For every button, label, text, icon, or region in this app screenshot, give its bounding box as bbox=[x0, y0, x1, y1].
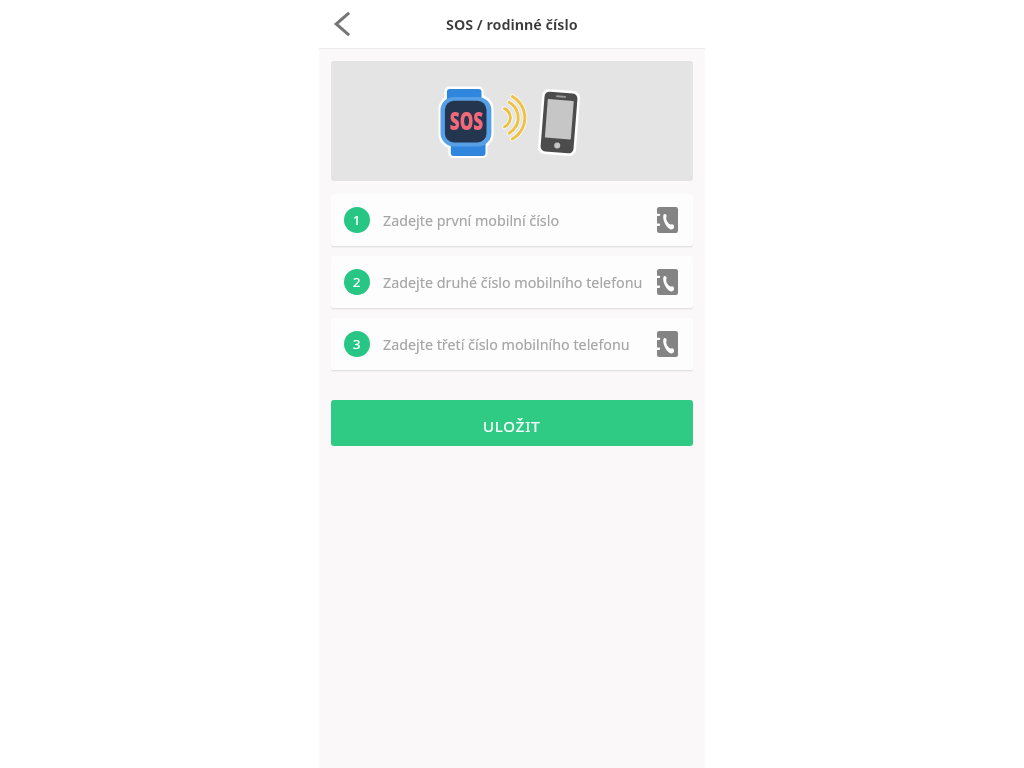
button[interactable]: 1 bbox=[331, 194, 693, 246]
button[interactable]: Choose contact bbox=[652, 205, 682, 235]
staticText: Zadejte první mobilní číslo bbox=[383, 211, 652, 230]
button[interactable]: 3 bbox=[331, 318, 693, 370]
button[interactable]: Choose contact bbox=[652, 329, 682, 359]
staticText: SOS bbox=[450, 103, 483, 133]
staticText: 2 bbox=[353, 273, 361, 291]
button[interactable]: 2 bbox=[331, 256, 693, 308]
button[interactable]: ULOŽIT bbox=[331, 400, 693, 446]
staticText: Zadejte druhé číslo mobilního telefonu bbox=[383, 273, 652, 292]
button[interactable]: Choose contact bbox=[652, 267, 682, 297]
button[interactable]: Back bbox=[317, 0, 365, 48]
staticText: 3 bbox=[353, 335, 361, 353]
staticText: 1 bbox=[353, 211, 361, 229]
staticText: SOS / rodinné číslo bbox=[446, 15, 578, 34]
staticText: Zadejte třetí číslo mobilního telefonu bbox=[383, 335, 652, 354]
staticText: ULOŽIT bbox=[483, 416, 541, 436]
